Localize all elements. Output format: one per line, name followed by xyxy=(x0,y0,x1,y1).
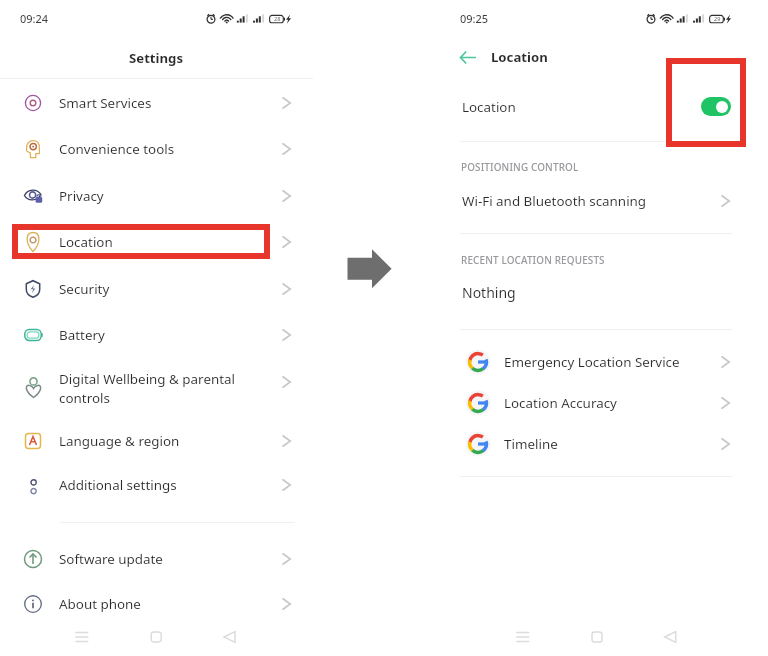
button[interactable]: Privacy xyxy=(0,174,313,218)
staticText: Convenience tools xyxy=(59,140,175,158)
button[interactable]: Convenience tools xyxy=(0,127,313,171)
button[interactable]: Digital Wellbeing & parental controls xyxy=(0,360,313,404)
staticText: RECENT LOCATION REQUESTS xyxy=(461,253,605,266)
button[interactable]: Wi-Fi and Bluetooth scanning xyxy=(450,180,768,222)
button[interactable]: Additional settings xyxy=(0,463,313,507)
button[interactable]: Software update xyxy=(0,537,313,581)
staticText: About phone xyxy=(59,595,141,613)
staticText: Timeline xyxy=(504,435,558,453)
staticText: POSITIONING CONTROL xyxy=(461,160,579,173)
button[interactable]: Location Accuracy xyxy=(450,383,768,423)
staticText: Location xyxy=(59,233,113,251)
staticText: Location xyxy=(462,98,516,116)
button[interactable]: Emergency Location Service xyxy=(450,342,768,382)
staticText: Smart Services xyxy=(59,94,152,112)
staticText: 09:25 xyxy=(460,11,489,26)
staticText: Security xyxy=(59,280,110,298)
staticText: Additional settings xyxy=(59,476,177,494)
staticText: Digital Wellbeing & parental controls xyxy=(59,370,236,407)
button[interactable]: Back xyxy=(452,44,480,72)
button[interactable]: Battery xyxy=(0,313,313,357)
button[interactable]: Timeline xyxy=(450,424,768,464)
staticText: Wi-Fi and Bluetooth scanning xyxy=(462,192,647,210)
staticText: Location xyxy=(491,48,548,66)
button[interactable]: Language & region xyxy=(0,419,313,463)
button[interactable]: Security xyxy=(0,267,313,311)
staticText: 29 xyxy=(714,15,721,23)
staticText: Emergency Location Service xyxy=(504,353,680,371)
button[interactable]: Location xyxy=(0,220,313,264)
staticText: Settings xyxy=(129,49,184,67)
button[interactable]: Smart Services xyxy=(0,81,313,125)
staticText: Language & region xyxy=(59,432,180,450)
staticText: Location Accuracy xyxy=(504,394,617,412)
staticText: 09:24 xyxy=(20,11,49,26)
staticText: Privacy xyxy=(59,187,104,205)
staticText: Nothing xyxy=(462,283,516,302)
button[interactable]: Location xyxy=(450,86,768,128)
button[interactable]: About phone xyxy=(0,582,313,626)
staticText: Software update xyxy=(59,550,163,568)
staticText: Battery xyxy=(59,326,105,344)
staticText: 28 xyxy=(274,15,281,23)
